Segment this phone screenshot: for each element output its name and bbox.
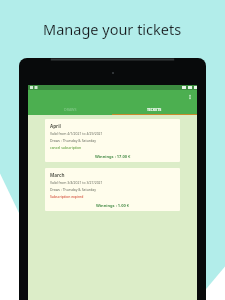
staticText: Winnings : 17.00 € [95, 154, 131, 159]
staticText: Subscription expired [50, 194, 84, 199]
button[interactable]: TICKETS [112, 104, 197, 114]
button[interactable]: More options [186, 93, 194, 101]
staticText: TICKETS [147, 107, 162, 112]
staticText: Winnings : 1.00 € [96, 203, 130, 208]
staticText: DRAWS [64, 107, 77, 112]
button[interactable]: March [45, 168, 180, 211]
staticText: cancel subscription [50, 145, 82, 150]
staticText: Draws : Thursday & Saturday [50, 187, 96, 192]
staticText: Valid from 4/1/2021 to 4/29/2021 [50, 131, 103, 136]
staticText: March [50, 172, 65, 178]
staticText: Manage your tickets [43, 19, 182, 39]
staticText: Draws : Thursday & Saturday [50, 138, 96, 143]
staticText: April [50, 123, 61, 129]
staticText: Valid from 3/4/2021 to 3/27/2021 [50, 180, 103, 185]
button[interactable]: April [45, 119, 180, 162]
button[interactable]: DRAWS [28, 104, 112, 114]
